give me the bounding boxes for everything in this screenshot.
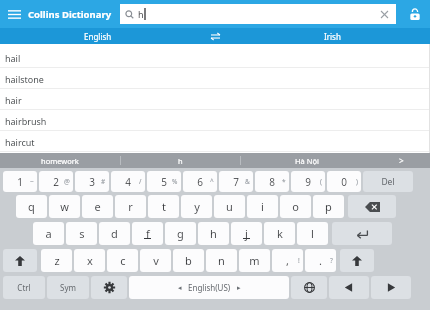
- button[interactable]: h: [121, 153, 240, 168]
- button[interactable]: Ctrl: [3, 276, 45, 299]
- staticText: u: [226, 199, 233, 214]
- button[interactable]: s: [66, 222, 97, 245]
- button[interactable]: ,: [272, 249, 303, 272]
- staticText: @: [64, 177, 70, 186]
- button[interactable]: Lock: [402, 1, 428, 27]
- button[interactable]: Backspace: [348, 195, 396, 218]
- button[interactable]: w: [49, 195, 80, 218]
- button[interactable]: Clear: [375, 5, 393, 23]
- button[interactable]: hairbrush: [0, 110, 430, 131]
- staticText: 5: [161, 175, 167, 189]
- staticText: t: [162, 199, 166, 214]
- button[interactable]: m: [239, 249, 270, 272]
- staticText: 3: [89, 175, 95, 189]
- button[interactable]: hailstone: [0, 68, 430, 89]
- button[interactable]: t: [148, 195, 179, 218]
- button[interactable]: Sym: [47, 276, 89, 299]
- staticText: >: [399, 155, 404, 166]
- button[interactable]: Cursor right: [371, 276, 411, 299]
- button[interactable]: haircut: [0, 131, 430, 152]
- button[interactable]: 4: [111, 171, 145, 192]
- button[interactable]: u: [214, 195, 245, 218]
- button[interactable]: n: [206, 249, 237, 272]
- staticText: hair: [5, 94, 22, 106]
- button[interactable]: 8: [255, 171, 289, 192]
- staticText: g: [177, 226, 184, 241]
- staticText: j: [245, 226, 248, 241]
- button[interactable]: v: [140, 249, 171, 272]
- button[interactable]: y: [181, 195, 212, 218]
- button[interactable]: ◂: [129, 276, 289, 299]
- button[interactable]: z: [41, 249, 72, 272]
- staticText: English(US): [188, 282, 231, 293]
- button[interactable]: Menu: [0, 0, 28, 28]
- staticText: hairbrush: [5, 115, 47, 127]
- button[interactable]: 0: [327, 171, 361, 192]
- staticText: #: [101, 177, 106, 186]
- staticText: h: [178, 156, 183, 166]
- staticText: ,: [286, 253, 289, 268]
- staticText: h: [138, 8, 144, 20]
- button[interactable]: Change language: [291, 276, 327, 299]
- button[interactable]: 6: [183, 171, 217, 192]
- staticText: 2: [53, 175, 59, 189]
- staticText: 8: [269, 175, 275, 189]
- staticText: ^: [210, 177, 214, 186]
- button[interactable]: 9: [291, 171, 325, 192]
- button[interactable]: q: [16, 195, 47, 218]
- button[interactable]: h: [198, 222, 229, 245]
- staticText: o: [292, 199, 299, 214]
- staticText: Sym: [60, 282, 76, 293]
- staticText: 7: [233, 175, 239, 189]
- button[interactable]: o: [280, 195, 311, 218]
- button[interactable]: Shift: [340, 249, 374, 272]
- staticText: English: [84, 31, 112, 42]
- button[interactable]: 5: [147, 171, 181, 192]
- button[interactable]: hail: [0, 47, 430, 68]
- button[interactable]: b: [173, 249, 204, 272]
- staticText: e: [94, 199, 101, 214]
- button[interactable]: e: [82, 195, 113, 218]
- staticText: c: [120, 253, 126, 268]
- button[interactable]: x: [74, 249, 105, 272]
- button[interactable]: c: [107, 249, 138, 272]
- staticText: Collins Dictionary: [28, 8, 112, 21]
- button[interactable]: 7: [219, 171, 253, 192]
- button[interactable]: g: [165, 222, 196, 245]
- button[interactable]: k: [264, 222, 295, 245]
- button[interactable]: r: [115, 195, 146, 218]
- button[interactable]: Swap languages: [195, 28, 235, 44]
- button[interactable]: j: [231, 222, 262, 245]
- staticText: 6: [197, 175, 203, 189]
- button[interactable]: Settings: [91, 276, 127, 299]
- button[interactable]: .: [305, 249, 336, 272]
- button[interactable]: p: [313, 195, 344, 218]
- staticText: n: [218, 253, 225, 268]
- button[interactable]: Shift: [3, 249, 37, 272]
- button[interactable]: 2: [39, 171, 73, 192]
- button[interactable]: 3: [75, 171, 109, 192]
- button[interactable]: More suggestions: [373, 153, 430, 168]
- staticText: hail: [5, 52, 21, 64]
- button[interactable]: d: [99, 222, 130, 245]
- button[interactable]: h: [120, 4, 396, 24]
- staticText: (: [320, 177, 322, 186]
- button[interactable]: Cursor left: [329, 276, 369, 299]
- button[interactable]: hair: [0, 89, 430, 110]
- button[interactable]: English: [0, 28, 195, 44]
- staticText: hailstone: [5, 73, 44, 85]
- staticText: r: [128, 199, 133, 214]
- button[interactable]: homework: [0, 153, 120, 168]
- button[interactable]: 1: [3, 171, 37, 192]
- button[interactable]: f: [132, 222, 163, 245]
- staticText: l: [311, 226, 314, 241]
- button[interactable]: Delete: [363, 171, 413, 192]
- button[interactable]: i: [247, 195, 278, 218]
- staticText: w: [60, 199, 69, 214]
- button[interactable]: Hà Nội: [241, 153, 373, 168]
- staticText: k: [277, 226, 283, 241]
- button[interactable]: a: [33, 222, 64, 245]
- button[interactable]: Enter: [332, 222, 392, 245]
- button[interactable]: l: [297, 222, 328, 245]
- button[interactable]: Irish: [235, 28, 430, 44]
